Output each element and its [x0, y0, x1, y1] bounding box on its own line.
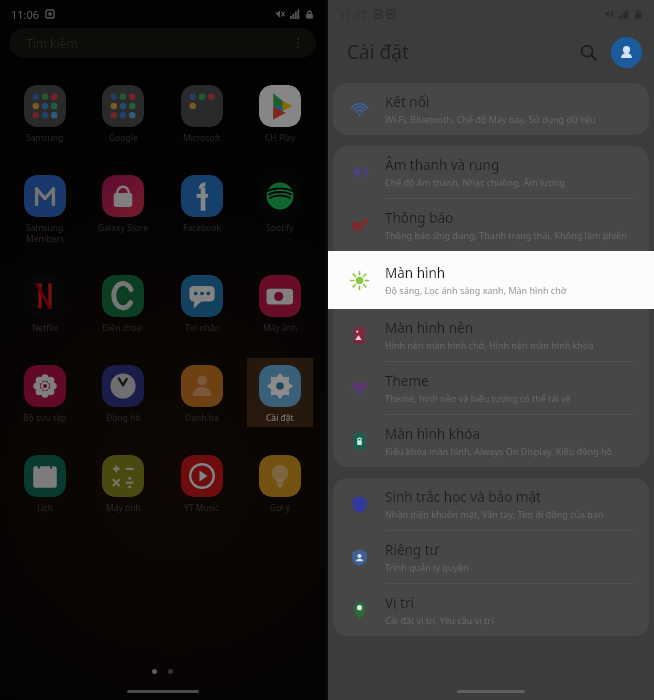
staticText: Theme	[385, 372, 429, 390]
staticText: Màn hình khóa	[385, 425, 480, 443]
staticText: Riêng tư	[385, 541, 439, 559]
staticText: Hình nền màn hình chờ, Hình nền màn hình…	[385, 339, 594, 351]
staticText: Bộ sưu tập	[23, 412, 67, 424]
staticText: Thông báo ứng dụng, Thanh trạng thái, Kh…	[385, 229, 627, 241]
staticText: Màn hình nền	[385, 319, 473, 337]
staticText: Theme, hình nền và biểu tượng có thể tải…	[385, 392, 571, 404]
staticText: Màn hình	[385, 264, 446, 282]
button[interactable]: Google	[90, 78, 156, 147]
button[interactable]: Màn hình khóa	[333, 415, 649, 467]
button[interactable]: Điện thoại	[90, 268, 156, 337]
staticText: Đồng hồ	[106, 412, 141, 424]
button[interactable]: Sinh trắc học và bảo mật	[333, 478, 649, 530]
button[interactable]: Tin nhắn	[169, 268, 235, 337]
button[interactable]: Bộ sưu tập	[12, 358, 78, 427]
staticText: Điện thoại	[102, 322, 144, 334]
button[interactable]: Spotify	[247, 168, 313, 237]
button[interactable]: Máy ảnh	[247, 268, 313, 337]
button[interactable]: Galaxy Store	[90, 168, 156, 237]
staticText: Spotify	[266, 222, 294, 234]
staticText: Nhận diện khuôn mặt, Vân tay, Tìm di độn…	[385, 508, 604, 520]
staticText: Độ sáng, Lọc ánh sáng xanh, Màn hình chờ	[385, 284, 567, 296]
button[interactable]: Vị trí	[333, 584, 649, 636]
staticText: Galaxy Store	[98, 222, 148, 234]
staticText: Google	[109, 132, 138, 144]
button[interactable]: Netflix	[12, 268, 78, 337]
button[interactable]: Account	[611, 37, 642, 68]
button[interactable]: Cài đặt	[247, 358, 313, 427]
staticText: Thông báo	[385, 209, 454, 227]
staticText: 11:06	[11, 7, 40, 22]
staticText: Máy tính	[106, 502, 141, 514]
button[interactable]: Đồng hồ	[90, 358, 156, 427]
staticText: Trình quản lý quyền	[385, 561, 469, 573]
staticText: Facebook	[183, 222, 222, 234]
button[interactable]: Search	[572, 36, 604, 68]
staticText: Netflix	[32, 322, 59, 334]
button[interactable]: Màn hình	[328, 251, 654, 309]
button[interactable]: Theme	[333, 362, 649, 414]
staticText: Máy ảnh	[263, 322, 298, 334]
button[interactable]: Samsung Members	[12, 168, 78, 247]
staticText: Gợi ý	[270, 502, 291, 514]
staticText: Cài đặt	[347, 39, 409, 65]
staticText: Tin nhắn	[185, 322, 220, 334]
button[interactable]: Gợi ý	[247, 448, 313, 517]
staticText: Wi-Fi, Bluetooth, Chế độ Máy bay, Sử dụn…	[385, 113, 596, 125]
button[interactable]: YT Music	[169, 448, 235, 517]
button[interactable]: Màn hình nền	[333, 309, 649, 361]
button[interactable]: Microsoft	[169, 78, 235, 147]
staticText: CH Play	[265, 132, 296, 144]
staticText: Cài đặt vị trí, Yêu cầu vị trí	[385, 614, 494, 626]
staticText: YT Music	[184, 502, 220, 514]
staticText: Vị trí	[385, 594, 415, 612]
staticText: Microsoft	[183, 132, 221, 144]
staticText: 11:07	[339, 7, 368, 22]
button[interactable]: CH Play	[247, 78, 313, 147]
staticText: Chế độ âm thanh, Nhạc chuông, Âm lượng	[385, 176, 565, 188]
staticText: Danh ba	[185, 412, 219, 424]
button[interactable]: Âm thanh và rung	[333, 146, 649, 198]
staticText: Samsung	[26, 132, 64, 144]
button[interactable]: Lịch	[12, 448, 78, 517]
button[interactable]: Thông báo	[333, 199, 649, 251]
staticText: Samsung Members	[26, 222, 65, 244]
button[interactable]: Samsung	[12, 78, 78, 147]
staticText: Cài đặt	[266, 412, 294, 424]
button[interactable]: Máy tính	[90, 448, 156, 517]
button[interactable]: Danh ba	[169, 358, 235, 427]
staticText: Âm thanh và rung	[385, 156, 500, 174]
staticText: Tìm kiếm	[26, 35, 78, 51]
staticText: Kết nối	[385, 93, 430, 111]
staticText: Sinh trắc học và bảo mật	[385, 488, 541, 506]
staticText: Kiểu khóa màn hình, Always On Display, K…	[385, 445, 612, 457]
button[interactable]: Riêng tư	[333, 531, 649, 583]
button[interactable]: Facebook	[169, 168, 235, 237]
button[interactable]: Kết nối	[333, 83, 649, 135]
staticText: Lịch	[37, 502, 53, 514]
